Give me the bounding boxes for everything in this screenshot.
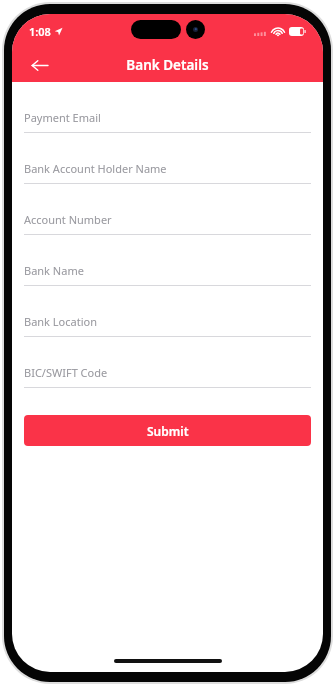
staticText: Payment Email bbox=[24, 110, 101, 125]
staticText: Bank Account Holder Name bbox=[24, 161, 167, 176]
button[interactable]: Back bbox=[25, 51, 53, 79]
button[interactable]: Account Number bbox=[24, 202, 311, 235]
button[interactable]: Bank Location bbox=[24, 304, 311, 337]
staticText: Bank Name bbox=[24, 263, 84, 278]
button[interactable]: Payment Email bbox=[24, 100, 311, 133]
button[interactable]: Submit bbox=[24, 415, 311, 446]
staticText: BIC/SWIFT Code bbox=[24, 365, 108, 380]
staticText: 1:08 bbox=[29, 24, 51, 39]
staticText: Bank Details bbox=[126, 56, 209, 74]
button[interactable]: BIC/SWIFT Code bbox=[24, 355, 311, 388]
button[interactable]: Bank Account Holder Name bbox=[24, 151, 311, 184]
staticText: Account Number bbox=[24, 212, 112, 227]
staticText: Bank Location bbox=[24, 314, 97, 329]
staticText: Submit bbox=[147, 423, 189, 439]
button[interactable]: Bank Name bbox=[24, 253, 311, 286]
